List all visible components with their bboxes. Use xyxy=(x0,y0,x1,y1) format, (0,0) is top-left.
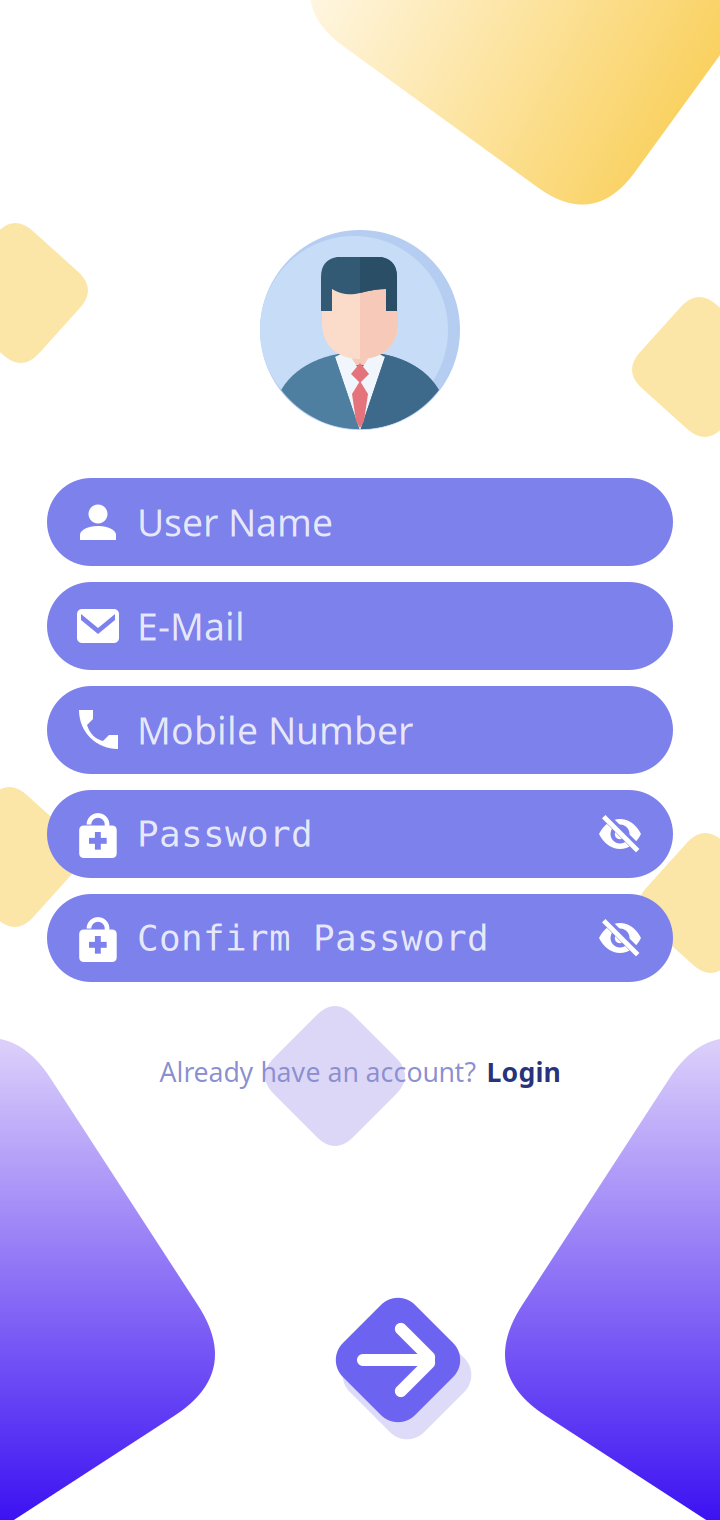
staticText: E-Mail xyxy=(137,601,245,651)
staticText: Password xyxy=(137,814,313,854)
button[interactable]: Mobile Number xyxy=(47,686,673,774)
staticText: Login xyxy=(486,1054,560,1089)
button[interactable]: Password xyxy=(47,790,673,878)
staticText: User Name xyxy=(137,497,333,547)
button[interactable]: Continue xyxy=(275,1275,445,1445)
button[interactable]: Confirm Password xyxy=(47,894,673,982)
staticText: Mobile Number xyxy=(137,705,413,755)
staticText: Confirm Password xyxy=(137,918,489,958)
staticText: Already have an account? xyxy=(159,1054,476,1089)
button[interactable]: E-Mail xyxy=(47,582,673,670)
button[interactable]: User Name xyxy=(47,478,673,566)
button[interactable]: Already have an account? xyxy=(151,1048,568,1095)
